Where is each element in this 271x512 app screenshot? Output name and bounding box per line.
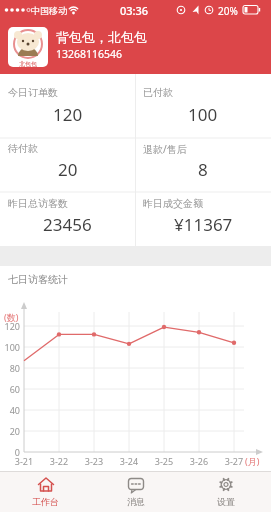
staticText: 昨日总访客数 bbox=[8, 197, 68, 210]
staticText: 3-25 bbox=[147, 455, 181, 467]
staticText: 工作台 bbox=[32, 496, 59, 507]
staticText: 背包包，北包包 bbox=[56, 29, 147, 45]
staticText: 3-22 bbox=[42, 455, 76, 467]
staticText: 100 bbox=[188, 103, 218, 126]
button[interactable]: 待付款 bbox=[0, 136, 135, 191]
button[interactable]: 工作台 bbox=[0, 471, 91, 512]
staticText: 昨日成交金额 bbox=[143, 197, 203, 210]
staticText: 3-27 bbox=[217, 455, 251, 467]
staticText: 退款/售后 bbox=[143, 142, 187, 156]
staticText: 七日访客统计 bbox=[8, 273, 68, 286]
staticText: 20 bbox=[0, 425, 20, 437]
staticText: 13268116546 bbox=[56, 47, 123, 61]
staticText: 已付款 bbox=[143, 86, 173, 99]
button[interactable]: 昨日总访客数 bbox=[0, 191, 135, 246]
button[interactable]: 昨日成交金额 bbox=[135, 191, 271, 246]
staticText: 40 bbox=[0, 404, 20, 416]
staticText: 3-24 bbox=[112, 455, 146, 467]
staticText: 120 bbox=[0, 320, 20, 332]
staticText: 60 bbox=[0, 383, 20, 395]
staticText: 100 bbox=[0, 341, 20, 353]
staticText: 20% bbox=[218, 4, 238, 18]
staticText: 3-21 bbox=[7, 455, 41, 467]
staticText: 0 bbox=[0, 446, 20, 458]
staticText: 120 bbox=[53, 103, 83, 126]
button[interactable]: 退款/售后 bbox=[135, 136, 271, 191]
staticText: 8 bbox=[198, 158, 208, 181]
staticText: 北包包 bbox=[19, 60, 37, 67]
staticText: 03:36 bbox=[120, 3, 149, 18]
staticText: ¥11367 bbox=[174, 213, 233, 236]
staticText: 设置 bbox=[217, 496, 235, 507]
staticText: 待付款 bbox=[8, 142, 38, 155]
staticText: 消息 bbox=[127, 496, 145, 507]
button[interactable]: 消息 bbox=[91, 471, 181, 512]
button[interactable]: 设置 bbox=[181, 471, 271, 512]
staticText: 3-26 bbox=[182, 455, 216, 467]
staticText: 23456 bbox=[43, 213, 92, 236]
staticText: 20 bbox=[58, 158, 78, 181]
staticText: 今日订单数 bbox=[8, 86, 58, 99]
staticText: 中国移动 bbox=[31, 5, 67, 16]
staticText: (月) bbox=[245, 455, 260, 467]
button[interactable]: 今日订单数 bbox=[0, 80, 135, 136]
button[interactable]: 已付款 bbox=[135, 80, 271, 136]
button[interactable]: 北包包 bbox=[0, 20, 271, 74]
staticText: 80 bbox=[0, 362, 20, 374]
staticText: 3-23 bbox=[77, 455, 111, 467]
staticText: (数) bbox=[4, 311, 19, 323]
